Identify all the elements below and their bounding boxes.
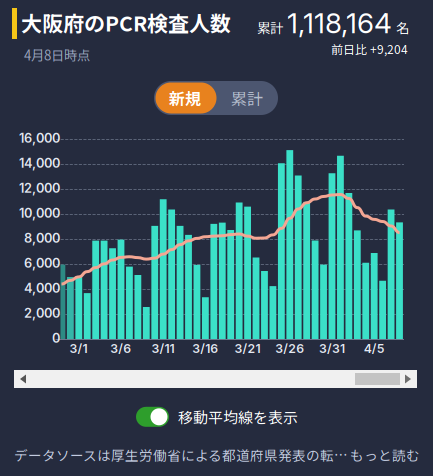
- staticText: 3/11: [151, 341, 174, 356]
- staticText: 10,000: [19, 205, 60, 221]
- staticText: 名: [396, 18, 409, 37]
- staticText: 3/6: [110, 341, 131, 356]
- staticText: 2,000: [24, 305, 60, 321]
- staticText: 移動平均線を表示: [178, 406, 298, 428]
- staticText: 8,000: [24, 230, 60, 246]
- staticText: 前日比 +9,204: [331, 40, 408, 57]
- staticText: 4/5: [364, 341, 385, 356]
- staticText: 3/31: [319, 341, 345, 356]
- staticText: 0: [52, 330, 60, 346]
- button[interactable]: 新規: [154, 81, 278, 115]
- button[interactable]: もっと読む: [350, 445, 420, 465]
- staticText: 累計: [257, 18, 283, 37]
- staticText: 新規: [169, 86, 201, 110]
- staticText: 3/1: [69, 341, 87, 356]
- staticText: 1,118,164: [287, 6, 392, 40]
- button[interactable]: 移動平均線を表示: [136, 406, 298, 428]
- staticText: 14,000: [19, 155, 60, 171]
- staticText: 大阪府のPCR検査人数: [21, 7, 231, 37]
- staticText: 3/26: [275, 341, 304, 356]
- staticText: 6,000: [24, 255, 60, 271]
- staticText: データソースは厚生労働省による都道府県発表の転…: [14, 445, 348, 465]
- staticText: 3/21: [234, 341, 260, 356]
- staticText: 3/16: [192, 341, 218, 356]
- staticText: 16,000: [19, 130, 60, 146]
- staticText: 12,000: [19, 180, 60, 196]
- staticText: 4月8日時点: [24, 45, 90, 64]
- staticText: もっと読む: [350, 445, 420, 465]
- staticText: 4,000: [24, 280, 60, 296]
- staticText: 累計: [231, 86, 263, 110]
